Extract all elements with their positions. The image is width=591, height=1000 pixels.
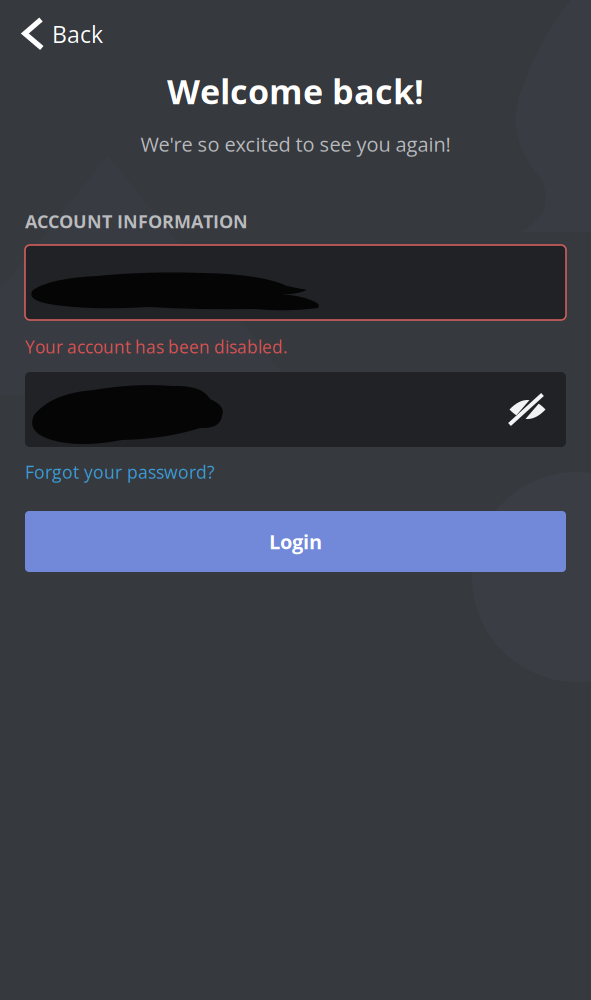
button[interactable]: Password [25,372,566,447]
button[interactable]: Forgot your password? [25,457,215,487]
staticText: Your account has been disabled. [25,335,288,358]
staticText: Login [269,528,322,555]
button[interactable]: Email or phone number [25,245,566,320]
button[interactable]: Back [0,8,119,60]
staticText: We're so excited to see you again! [140,130,450,158]
staticText: Forgot your password? [25,460,215,484]
button[interactable]: Show password [492,372,566,447]
staticText: Back [52,18,103,50]
staticText: Welcome back! [167,68,424,114]
button[interactable]: Login [25,511,566,572]
staticText: ACCOUNT INFORMATION [25,209,248,233]
